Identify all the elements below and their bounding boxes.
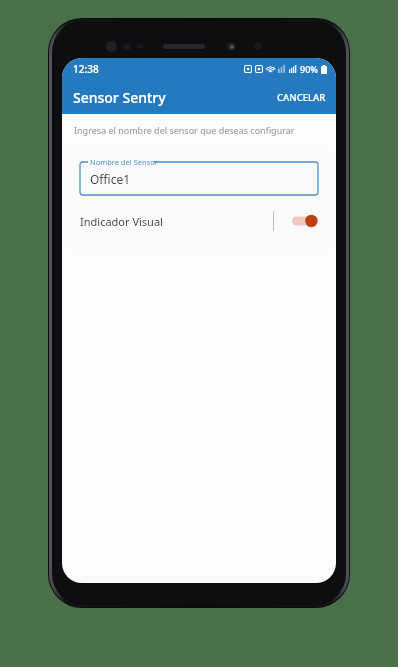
staticText: Nombre del Sensor	[90, 157, 158, 167]
staticText: Sensor Sentry	[73, 88, 166, 107]
staticText: 90%	[300, 63, 318, 75]
staticText: Office1	[90, 171, 131, 187]
staticText: Ingresa el nombre del sensor que deseas …	[74, 124, 295, 136]
staticText: 12:38	[73, 62, 99, 76]
staticText: Indicador Visual	[80, 214, 163, 229]
button[interactable]: Indicador Visual	[80, 209, 318, 233]
staticText: CANCELAR	[277, 91, 326, 104]
button[interactable]: CANCELAR	[267, 83, 336, 112]
other: Indicador Visual toggle	[292, 213, 318, 229]
